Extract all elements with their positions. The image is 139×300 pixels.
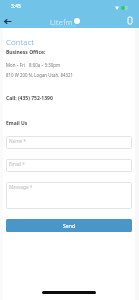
staticText: Contact (6, 36, 34, 47)
staticText: Email * (9, 161, 25, 167)
button[interactable]: Email * (6, 159, 132, 172)
staticText: Call: (435) 752-1390 (6, 95, 53, 102)
staticText: Email Us (6, 120, 28, 127)
staticText: 3:45 (11, 3, 21, 10)
button[interactable]: Back (1, 15, 14, 28)
staticText: Litefm (50, 17, 73, 27)
staticText: 810 W 200 N, Logan Utah, 84321 (6, 72, 74, 78)
staticText: Send (63, 222, 76, 229)
staticText: 8:00a – 5:30pm (29, 62, 61, 68)
staticText: Name * (9, 138, 27, 144)
button[interactable]: Send (6, 219, 132, 232)
button[interactable]: Cast to device (123, 14, 136, 27)
button[interactable]: Litefm home (46, 13, 84, 28)
staticText: your life, your music (52, 24, 77, 28)
staticText: Business Office: (6, 49, 46, 56)
button[interactable]: Name * (6, 136, 132, 149)
staticText: Mon – Fri (6, 62, 26, 68)
button[interactable]: Message * (6, 182, 132, 209)
staticText: Message * (9, 184, 33, 190)
